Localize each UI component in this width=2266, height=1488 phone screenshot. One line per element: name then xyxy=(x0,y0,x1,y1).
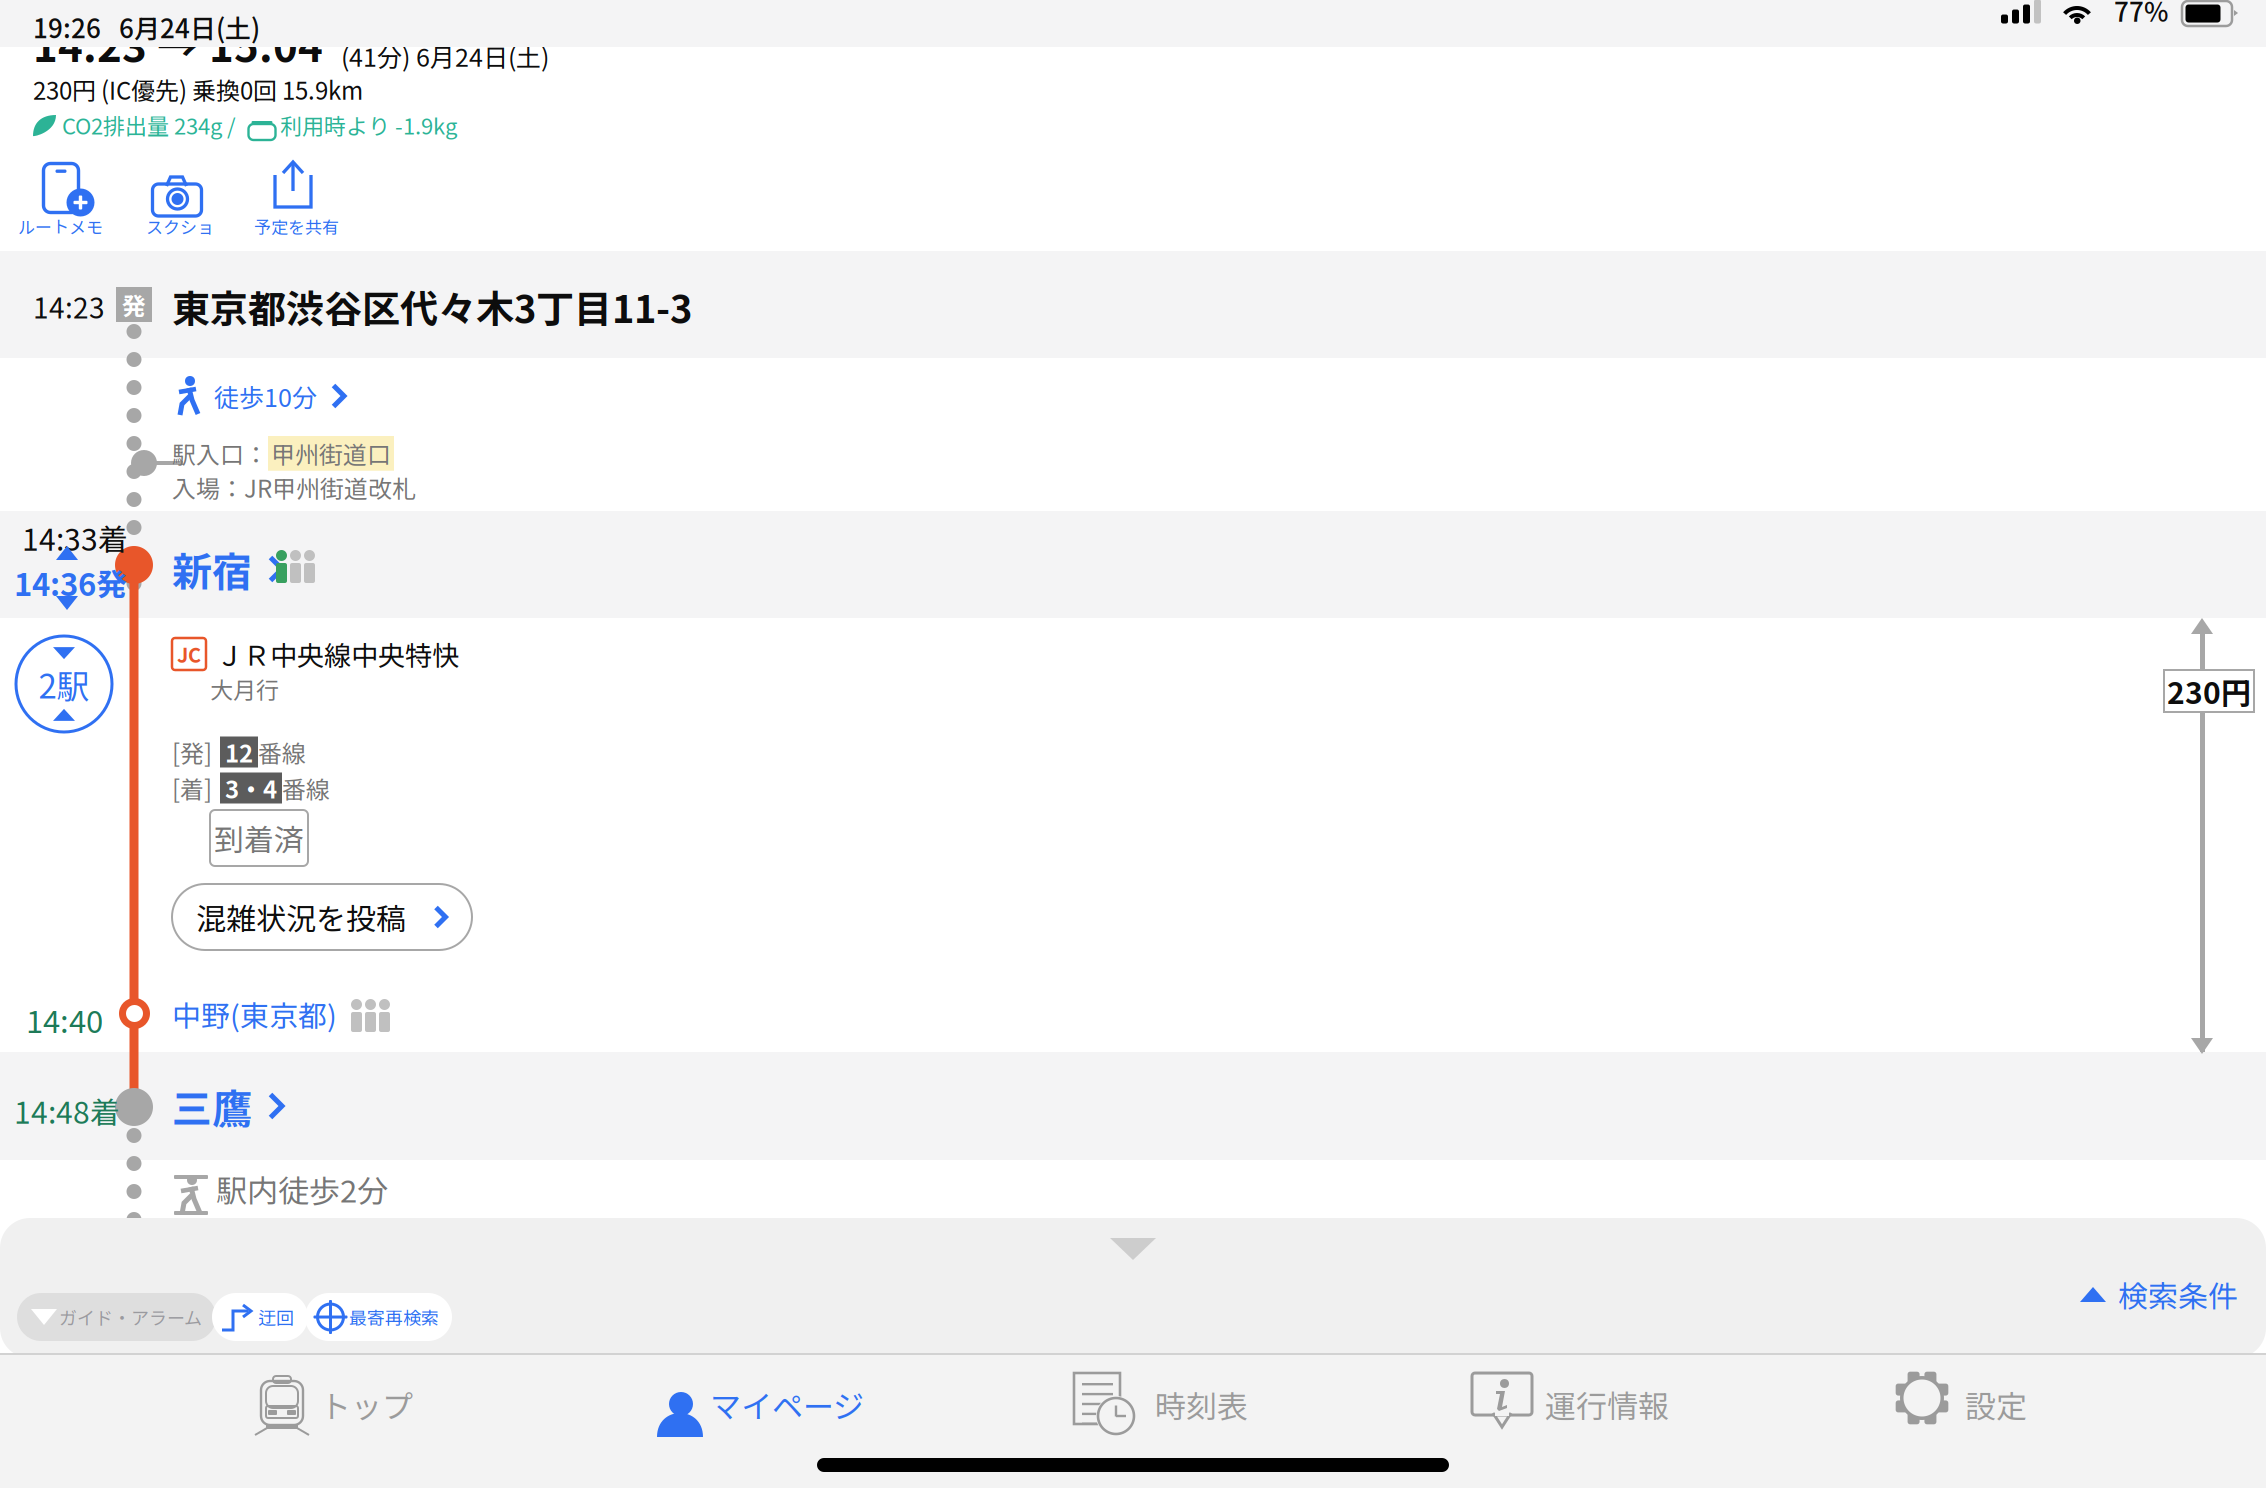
button[interactable]: スクショ xyxy=(145,160,295,250)
button[interactable]: マイページ xyxy=(605,1368,945,1452)
button[interactable]: 設定 xyxy=(1853,1368,2193,1452)
button[interactable]: 徒歩10分 xyxy=(174,372,346,420)
button[interactable]: 三鷹 xyxy=(172,1078,284,1134)
staticText: 東京都渋谷区代々木3丁目11-3 xyxy=(172,279,692,334)
staticText: 77% xyxy=(2114,0,2168,29)
button[interactable]: ルートメモ xyxy=(18,160,168,250)
button[interactable]: 迂回 xyxy=(212,1293,308,1341)
staticText: 到着済 xyxy=(214,816,304,860)
staticText: 19:26 6月24日(土) xyxy=(33,8,260,46)
staticText: 運行情報 xyxy=(1545,1382,1669,1427)
staticText: 230円 (IC優先) 乗換0回 15.9km xyxy=(33,72,363,107)
button[interactable]: トップ xyxy=(213,1368,553,1452)
staticText: JC xyxy=(177,639,201,668)
button[interactable]: 最寄再検索 xyxy=(305,1293,452,1341)
button[interactable]: 到着済 xyxy=(210,810,308,866)
staticText: [着] xyxy=(172,771,212,805)
staticText: 時刻表 xyxy=(1155,1382,1248,1427)
staticText: 混雑状況を投稿 xyxy=(196,895,406,939)
button[interactable]: ガイド・アラーム xyxy=(17,1293,216,1341)
staticText: 14:33着 xyxy=(22,516,128,559)
staticText: 番線 xyxy=(258,735,306,769)
staticText: 3・4 xyxy=(225,771,277,805)
staticText: 大月行 xyxy=(210,672,279,705)
staticText: 予定を共有 xyxy=(254,214,339,239)
staticText: スクショ xyxy=(146,214,214,239)
button[interactable]: 運行情報 xyxy=(1434,1368,1774,1452)
staticText: 設定 xyxy=(1965,1382,2027,1427)
staticText: 14:23 xyxy=(33,286,105,326)
staticText: 新宿 xyxy=(172,540,252,598)
staticText: マイページ xyxy=(710,1382,864,1427)
staticText: 発 xyxy=(122,287,146,322)
staticText: 検索条件 xyxy=(2118,1273,2238,1316)
button[interactable]: 混雑状況を投稿 xyxy=(172,884,472,950)
staticText: 14:40 xyxy=(26,997,103,1042)
button[interactable]: 予定を共有 xyxy=(254,160,404,250)
staticText: 14:36発 xyxy=(14,560,127,605)
staticText: 利用時より -1.9kg xyxy=(280,109,457,141)
staticText: 駅入口： xyxy=(172,436,268,471)
staticText: ＪＲ中央線中央特快 xyxy=(216,634,459,674)
staticText: 迂回 xyxy=(258,1304,294,1330)
staticText: 14:48着 xyxy=(14,1089,120,1132)
staticText: 徒歩10分 xyxy=(214,378,317,414)
staticText: [発] xyxy=(172,735,212,769)
staticText: CO2排出量 234g / xyxy=(62,109,236,141)
button[interactable]: 中野(東京都) xyxy=(172,992,337,1036)
staticText: 三鷹 xyxy=(172,1077,252,1135)
staticText: 中野(東京都) xyxy=(172,993,337,1035)
staticText: 230円 xyxy=(2167,669,2251,713)
staticText: 2駅 xyxy=(38,660,89,708)
button[interactable]: 新宿 xyxy=(172,543,284,595)
staticText: 番線 xyxy=(282,771,330,805)
staticText: 入場：JR甲州街道改札 xyxy=(172,470,416,505)
button[interactable]: 東京都渋谷区代々木3丁目11-3 xyxy=(172,279,692,334)
button[interactable]: 検索条件 xyxy=(2080,1271,2238,1317)
staticText: 駅内徒歩2分 xyxy=(216,1167,388,1211)
staticText: 12 xyxy=(225,735,253,769)
staticText: ルートメモ xyxy=(18,214,103,239)
staticText: ガイド・アラーム xyxy=(59,1304,202,1330)
button[interactable]: 時刻表 xyxy=(1033,1368,1373,1452)
staticText: (41分) 6月24日(土) xyxy=(341,38,549,74)
staticText: トップ xyxy=(320,1382,413,1427)
staticText: 甲州街道口 xyxy=(271,436,391,471)
staticText: 14:23 → 15:04 xyxy=(33,13,323,74)
staticText: 最寄再検索 xyxy=(349,1304,439,1330)
